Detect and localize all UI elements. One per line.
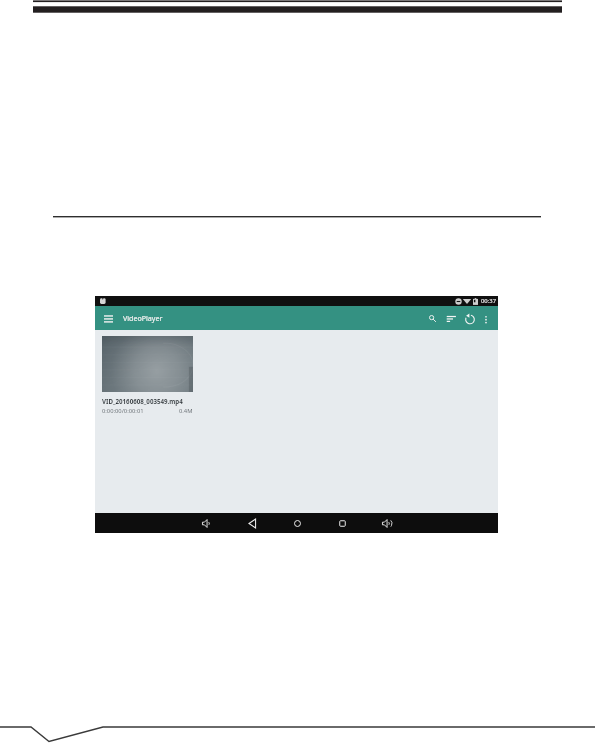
button[interactable]: Sort — [443, 311, 458, 326]
staticText: VideoPlayer — [123, 313, 163, 323]
staticText: 0:00:00/0:00:01 — [102, 407, 144, 415]
button[interactable]: More options — [479, 312, 492, 325]
button[interactable]: Volume up — [379, 515, 395, 531]
button[interactable]: Search — [425, 311, 440, 326]
staticText: 00:37 — [481, 297, 497, 305]
button[interactable]: VID_20160608_003549.mp4 — [102, 336, 193, 415]
button[interactable]: Back — [244, 515, 260, 531]
button[interactable]: Recents — [334, 515, 350, 531]
staticText: 0.4M — [179, 407, 193, 415]
staticText: VID_20160608_003549.mp4 — [102, 397, 183, 405]
button[interactable]: Refresh — [462, 311, 477, 326]
button[interactable]: Home — [289, 515, 305, 531]
button[interactable]: Open navigation drawer — [101, 311, 115, 325]
button[interactable]: Volume down — [199, 515, 215, 531]
